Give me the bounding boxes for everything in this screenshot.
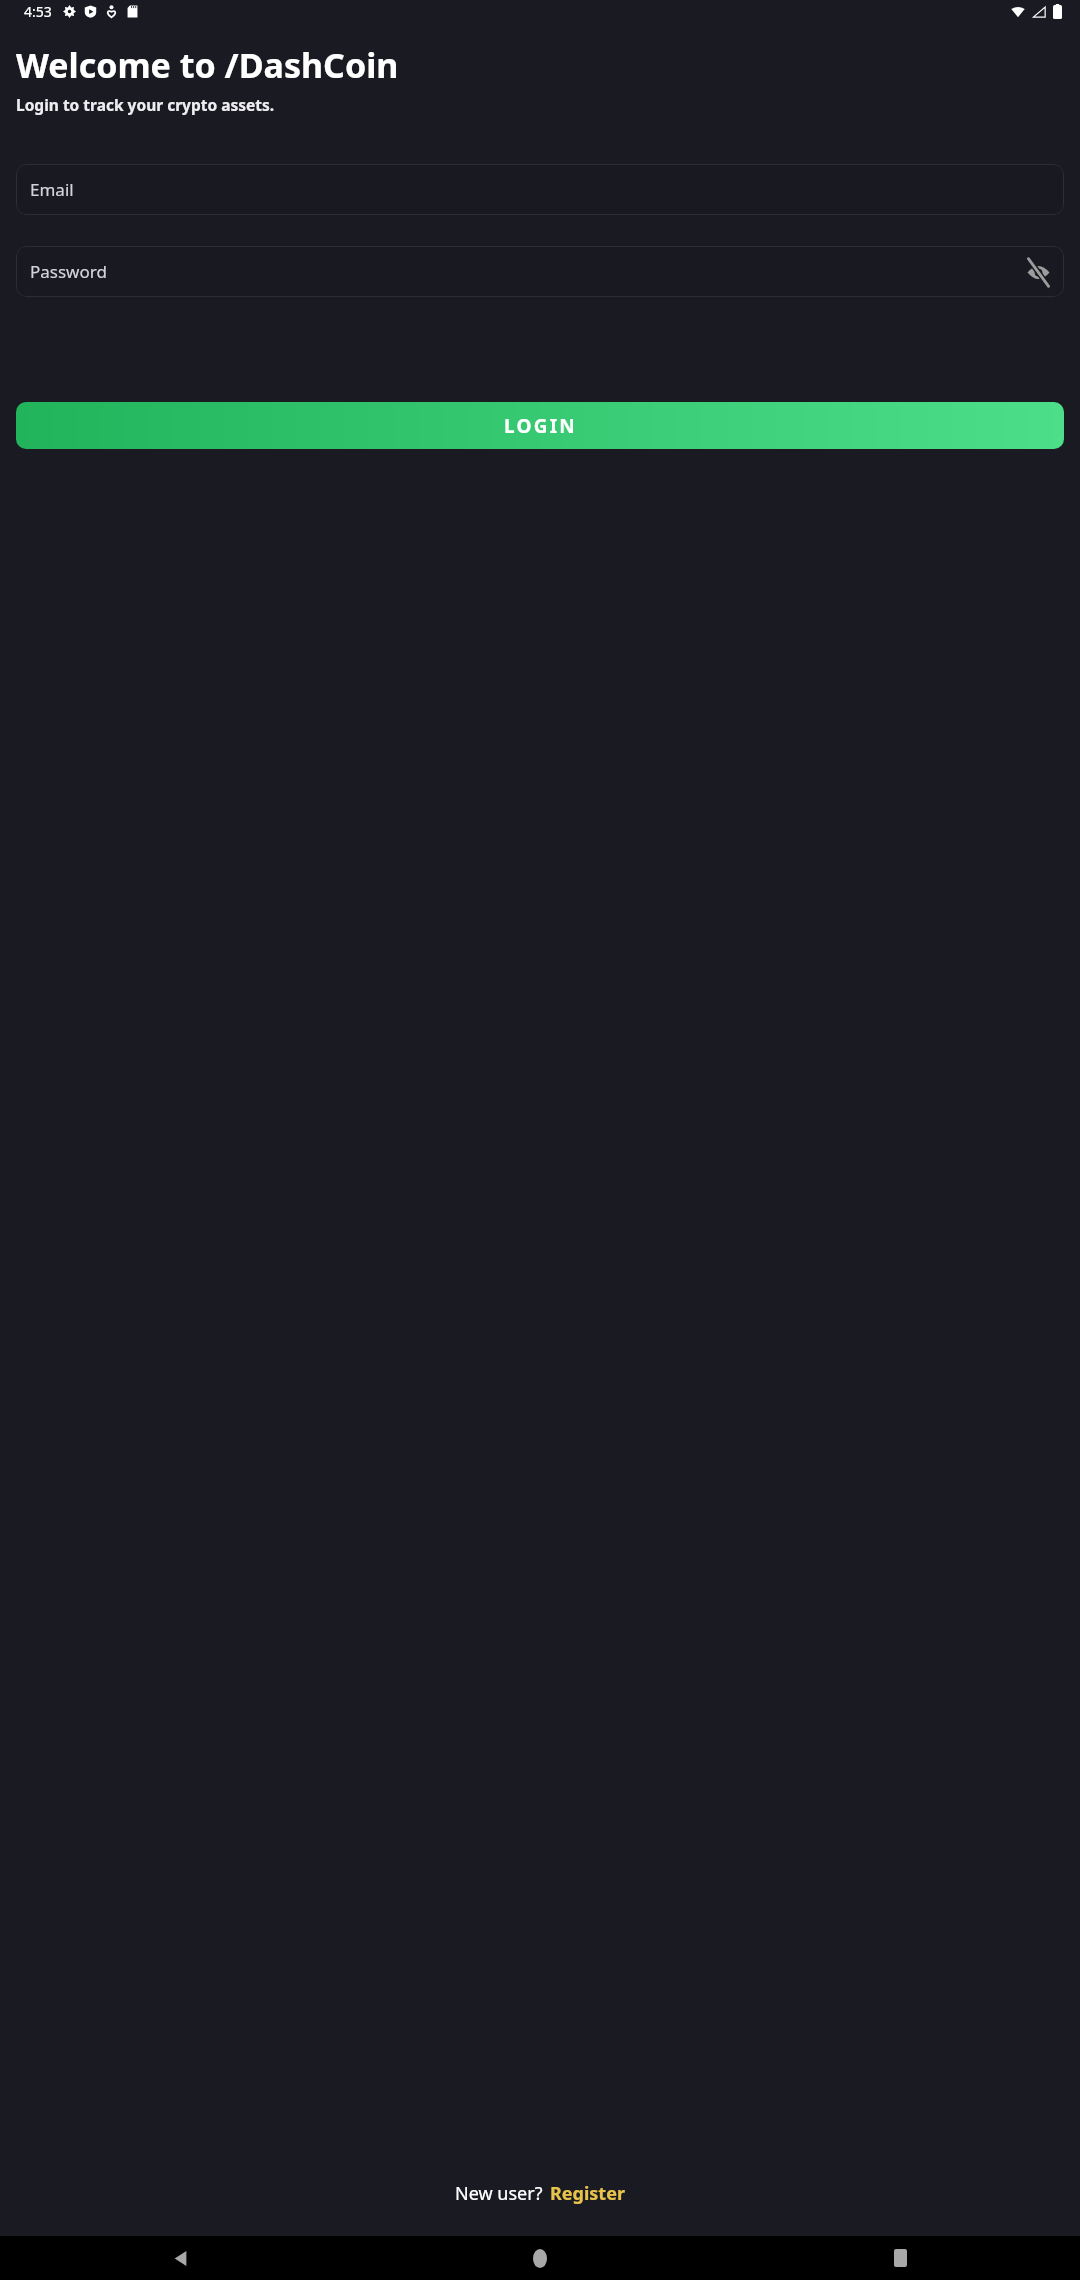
staticText: LOGIN [504,413,577,439]
button[interactable]: Recent apps [720,2236,1080,2280]
staticText: Email [30,178,74,201]
button[interactable]: LOGIN [16,402,1064,449]
button[interactable]: Back [0,2236,360,2280]
button[interactable]: Register [550,2181,625,2206]
button[interactable]: Email [16,164,1064,215]
staticText: 4:53 [24,2,52,21]
button[interactable]: Home [360,2236,720,2280]
staticText: New user? [455,2181,543,2206]
staticText: Login to track your crypto assets. [16,94,275,115]
staticText: Register [550,2181,625,2206]
staticText: Welcome to /DashCoin [16,42,399,88]
staticText: Password [30,260,107,283]
button[interactable]: Password [16,246,1064,297]
button[interactable]: Show password [1021,255,1055,289]
